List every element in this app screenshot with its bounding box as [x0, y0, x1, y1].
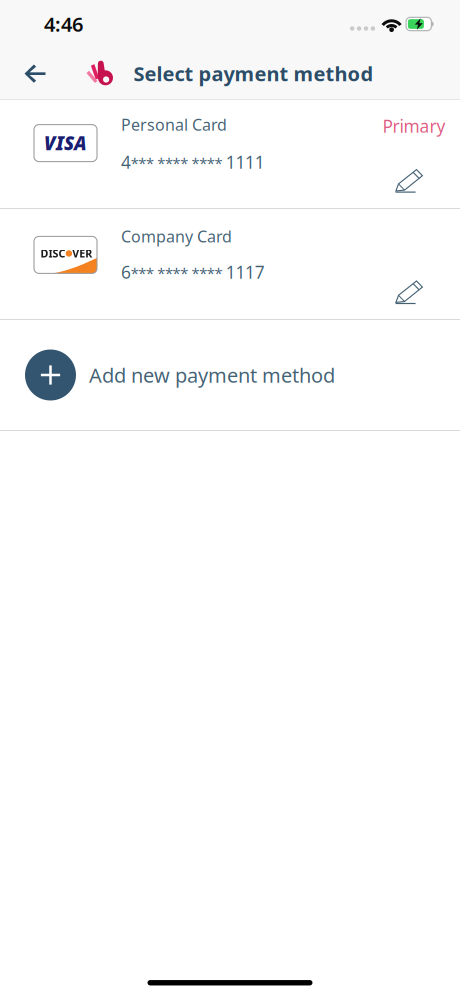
staticText: 4*** **** **** 1111	[121, 150, 265, 173]
staticText: Select payment method	[133, 60, 373, 87]
staticText: 6*** **** **** 1117	[121, 260, 265, 283]
button[interactable]: DISC	[0, 209, 460, 319]
button[interactable]: Edit Company Card	[384, 274, 460, 310]
staticText: Add new payment method	[89, 362, 335, 388]
staticText: VISA	[44, 131, 87, 155]
staticText: 4:46	[44, 11, 83, 37]
button[interactable]: Add new payment method	[0, 320, 460, 430]
button[interactable]: VISA	[0, 100, 460, 208]
button[interactable]: Edit Personal Card	[384, 163, 460, 199]
staticText: Personal Card	[121, 114, 227, 135]
staticText: VER	[72, 246, 92, 261]
staticText: DISC	[40, 246, 65, 261]
staticText: Primary	[382, 114, 445, 137]
button[interactable]: Back	[0, 52, 61, 94]
staticText: Company Card	[121, 226, 232, 247]
